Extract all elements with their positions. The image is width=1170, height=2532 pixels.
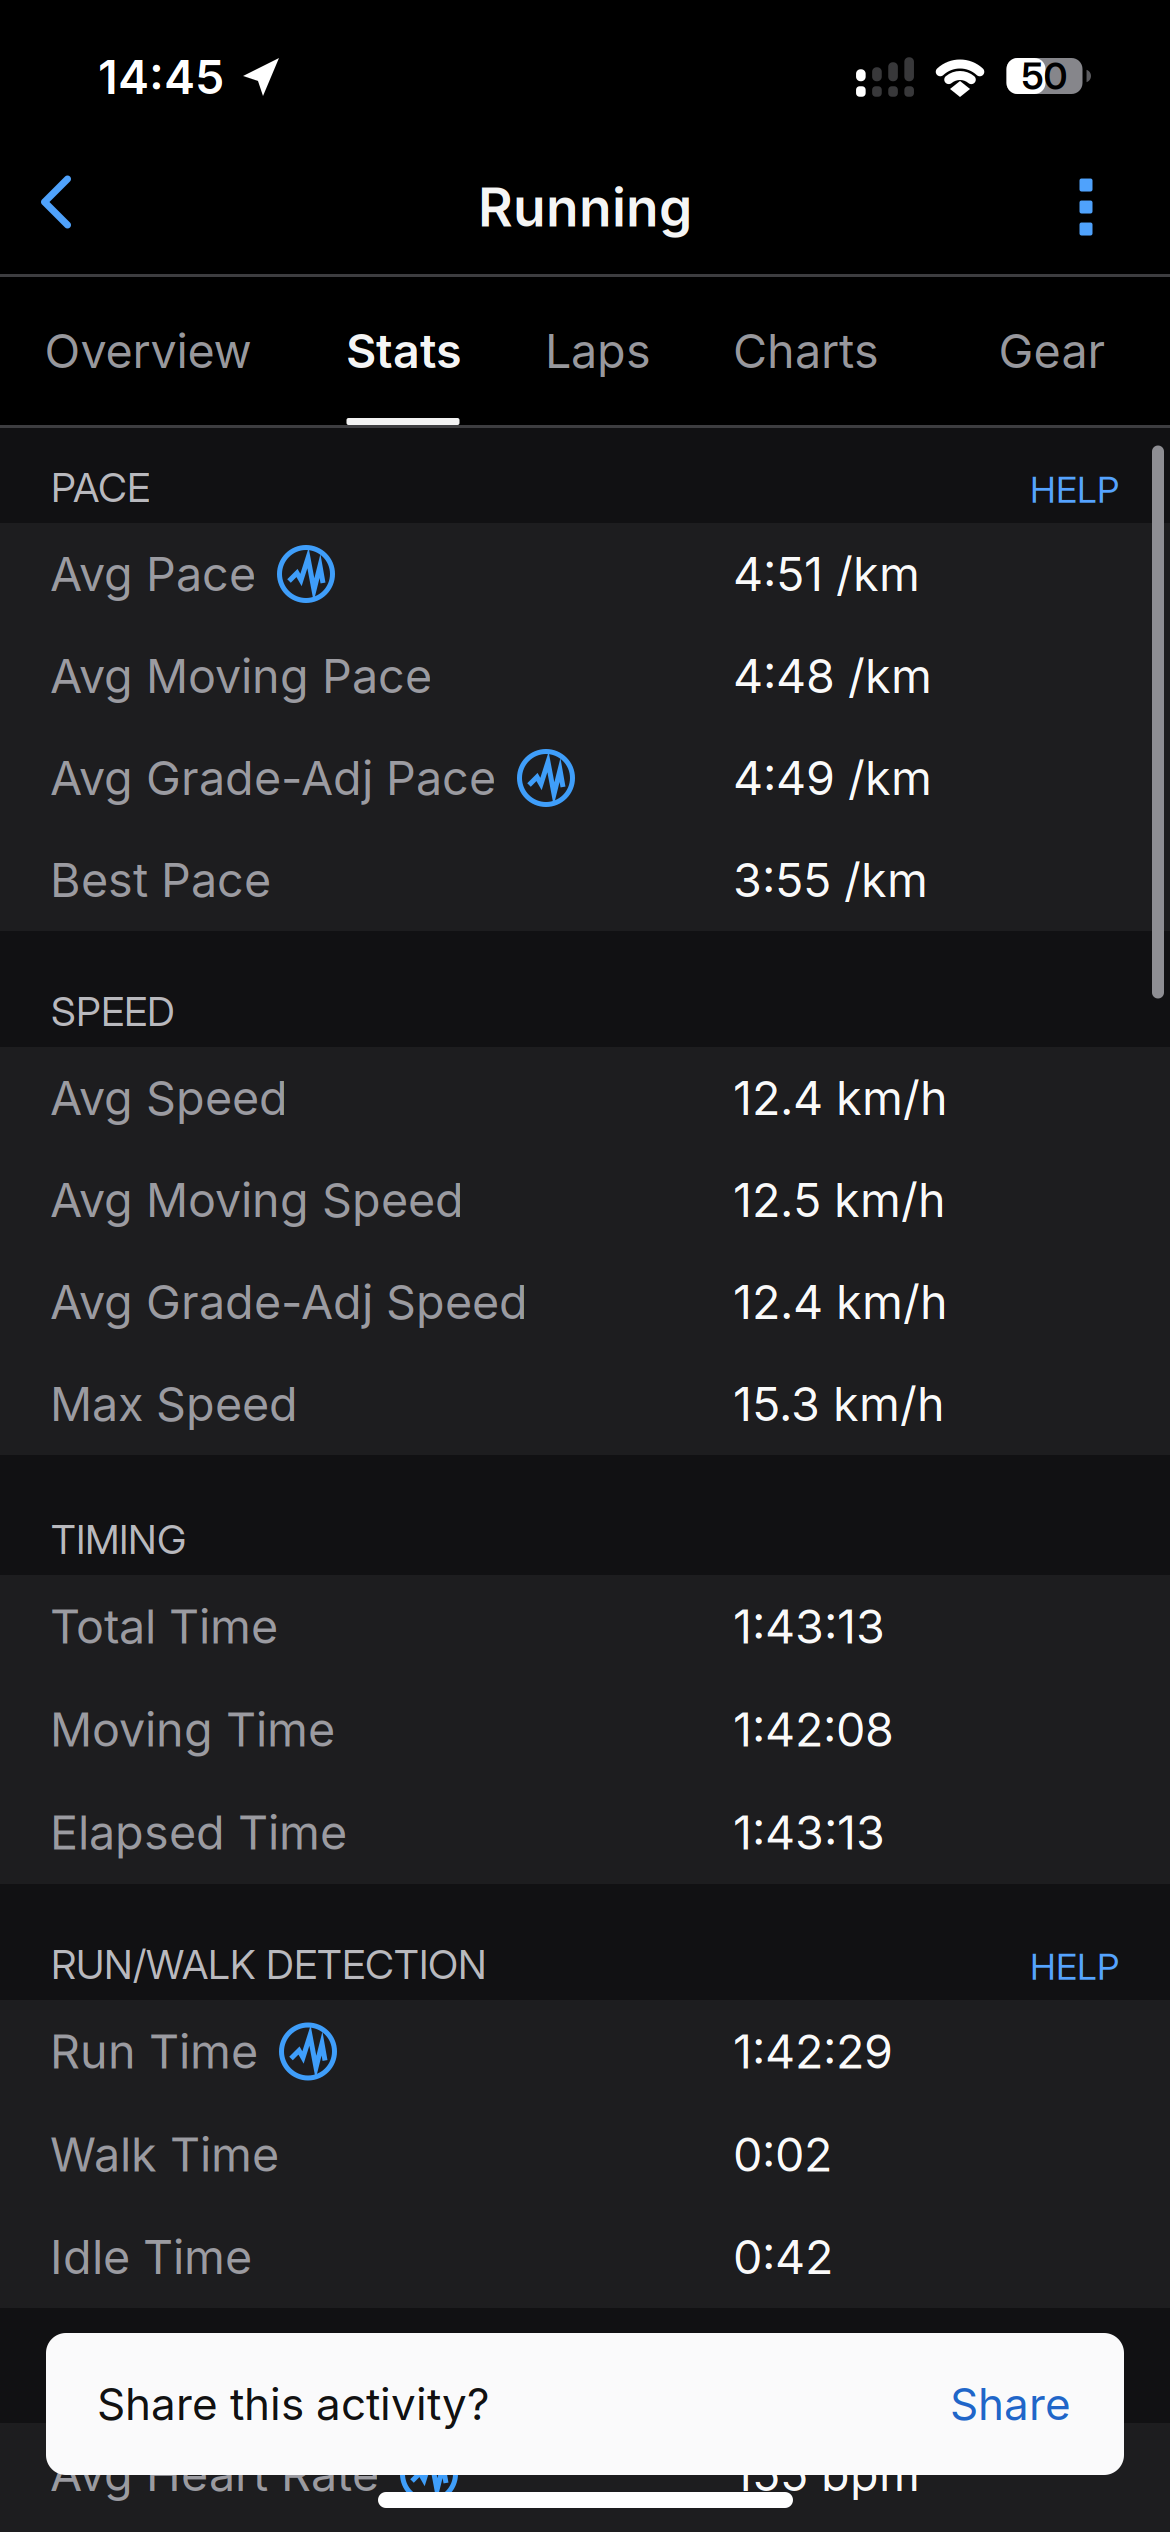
staticText: 14:45 <box>98 49 224 105</box>
staticText: Walk Time <box>50 2127 279 2182</box>
staticText: 15.3 km/h <box>733 1376 945 1432</box>
staticText: 155 bpm <box>733 2446 920 2502</box>
staticText: Elapsed Time <box>50 1805 347 1860</box>
staticText: Share <box>950 2378 1071 2430</box>
staticText: Gear <box>998 323 1105 379</box>
button[interactable]: Share <box>950 2378 1071 2430</box>
staticText: Laps <box>545 323 651 379</box>
button[interactable]: Overview <box>34 303 261 399</box>
staticText: PACE <box>51 464 150 511</box>
staticText: Avg Moving Speed <box>50 1172 464 1228</box>
staticText: 12.4 km/h <box>733 1070 948 1126</box>
staticText: 12.5 km/h <box>733 1172 946 1228</box>
staticText: 4:51 /km <box>733 546 920 602</box>
staticText: 1:42:08 <box>733 1702 894 1757</box>
button[interactable]: View chart <box>400 2445 458 2503</box>
staticText: 50 <box>1021 54 1067 98</box>
button[interactable]: View chart <box>517 749 575 807</box>
staticText: Idle Time <box>50 2229 252 2285</box>
staticText: 4:49 /km <box>733 750 932 806</box>
button[interactable]: View chart <box>277 545 335 603</box>
staticText: Run Time <box>50 2024 258 2079</box>
staticText: HEART RATE <box>51 2364 283 2411</box>
staticText: HELP <box>1030 1945 1119 1988</box>
button[interactable]: Gear <box>988 303 1115 399</box>
staticText: 3:55 /km <box>733 852 928 908</box>
staticText: Share this activity? <box>97 2378 489 2430</box>
button[interactable]: Laps <box>535 303 661 399</box>
button[interactable]: View chart <box>279 2022 337 2080</box>
staticText: 0:02 <box>733 2127 832 2182</box>
staticText: 4:48 /km <box>733 648 932 704</box>
staticText: Overview <box>44 323 251 379</box>
staticText: Best Pace <box>50 852 271 908</box>
staticText: Avg Pace <box>50 546 256 602</box>
staticText: 12.4 km/h <box>733 1274 948 1330</box>
staticText: 0:42 <box>733 2229 833 2285</box>
staticText: TIMING <box>51 1516 186 1563</box>
staticText: HELP <box>1030 468 1119 511</box>
staticText: Stats <box>346 323 462 379</box>
staticText: Charts <box>733 323 879 379</box>
staticText: Max Speed <box>50 1376 298 1432</box>
staticText: SPEED <box>51 988 175 1035</box>
button[interactable]: HELP <box>1030 1945 1119 1988</box>
button[interactable]: Charts <box>723 303 889 399</box>
staticText: Avg Heart Rate <box>50 2446 379 2502</box>
staticText: Running <box>478 175 692 238</box>
staticText: Avg Speed <box>50 1070 288 1126</box>
staticText: Moving Time <box>50 1702 335 1757</box>
button[interactable]: Stats <box>336 303 472 399</box>
staticText: Avg Grade-Adj Speed <box>50 1274 528 1330</box>
staticText: Total Time <box>50 1599 278 1654</box>
staticText: Avg Moving Pace <box>50 648 432 704</box>
staticText: 1:42:29 <box>733 2024 893 2079</box>
staticText: RUN/WALK DETECTION <box>51 1941 487 1988</box>
staticText: Avg Grade-Adj Pace <box>50 750 496 806</box>
staticText: 1:43:13 <box>733 1805 885 1860</box>
staticText: 1:43:13 <box>733 1599 885 1654</box>
button[interactable]: Back <box>28 164 83 240</box>
button[interactable]: More options <box>1065 164 1106 249</box>
button[interactable]: HELP <box>1030 468 1119 511</box>
